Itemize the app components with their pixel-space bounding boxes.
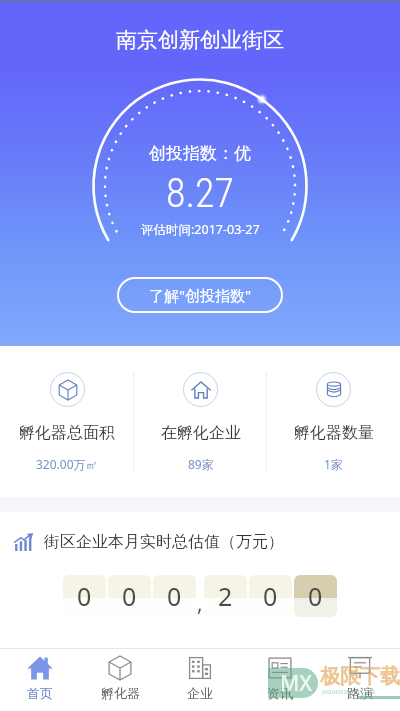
button[interactable]: 了解"创投指数" bbox=[117, 277, 283, 313]
button[interactable]: 资讯 bbox=[240, 648, 320, 711]
button[interactable]: 0 bbox=[153, 575, 196, 617]
staticText: , bbox=[197, 589, 203, 618]
staticText: 1家 bbox=[324, 456, 343, 472]
staticText: 0 bbox=[263, 579, 278, 613]
staticText: 街区企业本月实时总估值（万元） bbox=[44, 532, 284, 552]
button[interactable]: 孵化器 bbox=[80, 648, 160, 711]
staticText: 2 bbox=[218, 579, 233, 613]
staticText: 0 bbox=[308, 579, 323, 613]
staticText: 89家 bbox=[188, 456, 214, 472]
staticText: 了解"创投指数" bbox=[149, 285, 252, 305]
staticText: 在孵化企业 bbox=[161, 423, 241, 443]
staticText: 8.27 bbox=[166, 170, 234, 210]
staticText: 南京创新创业街区 bbox=[116, 27, 284, 53]
staticText: MX bbox=[280, 669, 313, 698]
button[interactable]: 0 bbox=[294, 575, 337, 617]
staticText: 资讯 bbox=[267, 685, 293, 701]
staticText: 评估时间:2017-03-27 bbox=[141, 221, 260, 238]
button[interactable]: 孵化器总面积 bbox=[0, 346, 134, 497]
button[interactable]: 0 bbox=[108, 575, 151, 617]
staticText: 320.00万㎡ bbox=[36, 456, 98, 472]
staticText: 孵化器 bbox=[101, 685, 140, 701]
staticText: JIXIANXIAZAI.COM bbox=[322, 688, 375, 696]
button[interactable]: 在孵化企业 bbox=[134, 346, 267, 497]
staticText: 首页 bbox=[27, 685, 53, 701]
staticText: 创投指数：优 bbox=[149, 143, 251, 164]
staticText: 孵化器数量 bbox=[294, 423, 374, 443]
button[interactable]: 0 bbox=[63, 575, 106, 617]
button[interactable]: 2 bbox=[204, 575, 247, 617]
staticText: 路演 bbox=[347, 685, 373, 701]
staticText: 0 bbox=[77, 579, 92, 613]
staticText: 0 bbox=[167, 579, 182, 613]
staticText: 孵化器总面积 bbox=[19, 423, 115, 443]
button[interactable]: 0 bbox=[249, 575, 292, 617]
button[interactable]: 孵化器数量 bbox=[267, 346, 400, 497]
button[interactable]: 首页 bbox=[0, 648, 80, 711]
button[interactable]: 企业 bbox=[160, 648, 240, 711]
staticText: 0 bbox=[122, 579, 137, 613]
button[interactable]: 路演 bbox=[320, 648, 400, 711]
staticText: 企业 bbox=[187, 685, 213, 701]
staticText: 极限下载 bbox=[320, 664, 400, 689]
